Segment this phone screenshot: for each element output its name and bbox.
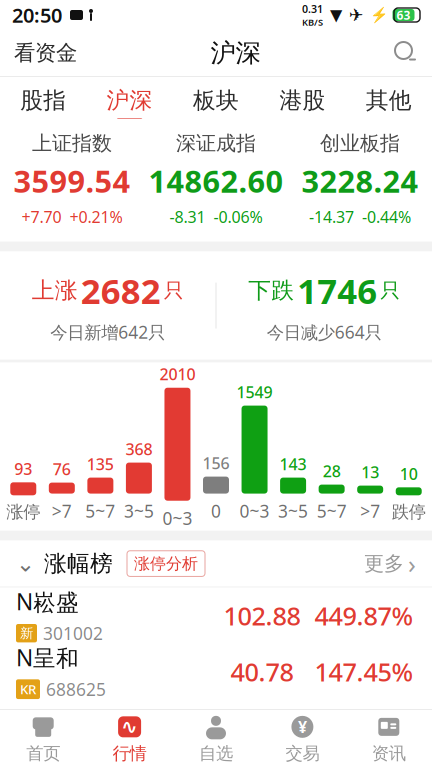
staticText: 3228.24	[301, 161, 418, 201]
staticText: -0.06%	[213, 206, 262, 227]
staticText: -8.31	[169, 206, 205, 227]
button[interactable]: 板块	[173, 77, 259, 119]
staticText: 涨幅榜	[44, 550, 113, 577]
staticText: 143	[280, 453, 307, 474]
staticText: 147.45%	[314, 655, 413, 688]
staticText: KR	[20, 680, 36, 698]
staticText: 2010	[159, 363, 195, 385]
staticText: 0~3	[162, 507, 192, 530]
button[interactable]: 股指	[0, 77, 86, 119]
staticText: ¥	[298, 716, 307, 737]
button[interactable]: 更多	[364, 547, 432, 580]
button[interactable]: 自选	[173, 710, 259, 768]
staticText: 港股	[279, 87, 325, 114]
staticText: ›	[408, 547, 416, 580]
staticText: 156	[202, 452, 229, 473]
staticText: N崧盛	[16, 586, 79, 617]
staticText: 创业板指	[320, 131, 400, 156]
staticText: 其他	[366, 87, 412, 114]
staticText: 0	[211, 500, 221, 523]
staticText: -14.37	[309, 206, 354, 227]
staticText: 行情	[113, 743, 147, 764]
staticText: 1549	[236, 381, 272, 402]
button[interactable]: 港股	[259, 77, 346, 119]
staticText: 3~5	[124, 500, 154, 523]
staticText: 76	[53, 458, 71, 479]
staticText: >7	[52, 500, 72, 523]
staticText: 交易	[285, 743, 319, 764]
staticText: ∿	[121, 715, 138, 738]
staticText: 板块	[193, 87, 239, 114]
button[interactable]: 资讯	[346, 710, 432, 768]
staticText: 下跌	[248, 277, 294, 304]
staticText: 40.78	[230, 655, 293, 688]
staticText: 688625	[46, 678, 106, 701]
staticText: 上涨	[32, 277, 78, 304]
staticText: 3~5	[278, 500, 308, 523]
staticText: N呈和	[16, 642, 79, 673]
staticText: 涨停分析	[134, 554, 198, 573]
staticText: 28	[323, 460, 341, 481]
staticText: ⚡	[370, 7, 388, 23]
button[interactable]: 首页	[0, 710, 86, 768]
staticText: 2682	[81, 267, 161, 313]
staticText: 5~7	[85, 500, 115, 523]
staticText: >7	[360, 500, 380, 523]
staticText: 0~3	[239, 500, 269, 523]
staticText: 5~7	[317, 500, 347, 523]
button[interactable]: 沪深	[86, 77, 173, 119]
button[interactable]: N呈和	[0, 644, 432, 700]
staticText: 沪深	[107, 87, 153, 114]
button[interactable]: 看资金	[0, 30, 91, 76]
staticText: 301002	[43, 622, 103, 645]
staticText: 新	[20, 625, 33, 641]
staticText: 涨停	[6, 501, 40, 523]
staticText: 0.31	[302, 2, 323, 16]
staticText: 今日新增642只	[50, 321, 165, 344]
staticText: 只	[164, 278, 184, 303]
staticText: 63	[396, 7, 410, 23]
staticText: KB/S	[302, 16, 323, 28]
staticText: ▼	[330, 6, 342, 24]
staticText: 只	[380, 278, 400, 303]
button[interactable]	[380, 30, 432, 76]
button[interactable]: 涨停分析	[113, 551, 205, 576]
staticText: 135	[87, 453, 114, 474]
staticText: 102.88	[223, 599, 300, 632]
staticText: 1746	[297, 267, 377, 313]
button[interactable]: ¥	[259, 710, 346, 768]
staticText: 股指	[20, 87, 66, 114]
staticText: 13	[361, 461, 379, 482]
staticText: 跌停	[392, 501, 426, 523]
staticText: ✈	[349, 5, 364, 25]
staticText: 3599.54	[13, 161, 130, 201]
button[interactable]: ⌄	[0, 550, 113, 577]
button[interactable]: ∿	[86, 710, 173, 768]
staticText: 368	[125, 438, 152, 459]
staticText: 看资金	[14, 40, 77, 66]
staticText: 14862.60	[148, 161, 283, 201]
staticText: 20:50	[12, 2, 62, 28]
staticText: 沪深	[210, 37, 260, 68]
staticText: 首页	[26, 743, 60, 764]
staticText: 资讯	[372, 743, 406, 764]
staticText: 10	[400, 463, 418, 484]
staticText: 深证成指	[176, 131, 256, 156]
staticText: +0.21%	[69, 206, 122, 227]
staticText: +7.70	[21, 206, 61, 227]
staticText: 自选	[199, 743, 233, 764]
staticText: 93	[14, 458, 32, 479]
staticText: 更多	[364, 551, 404, 576]
staticText: 449.87%	[314, 599, 413, 632]
button[interactable]: N崧盛	[0, 588, 432, 644]
staticText: ⌄	[16, 551, 35, 576]
staticText: -0.44%	[362, 206, 411, 227]
staticText: 上证指数	[32, 131, 112, 156]
button[interactable]: 其他	[346, 77, 432, 119]
staticText: 今日减少664只	[267, 321, 382, 344]
